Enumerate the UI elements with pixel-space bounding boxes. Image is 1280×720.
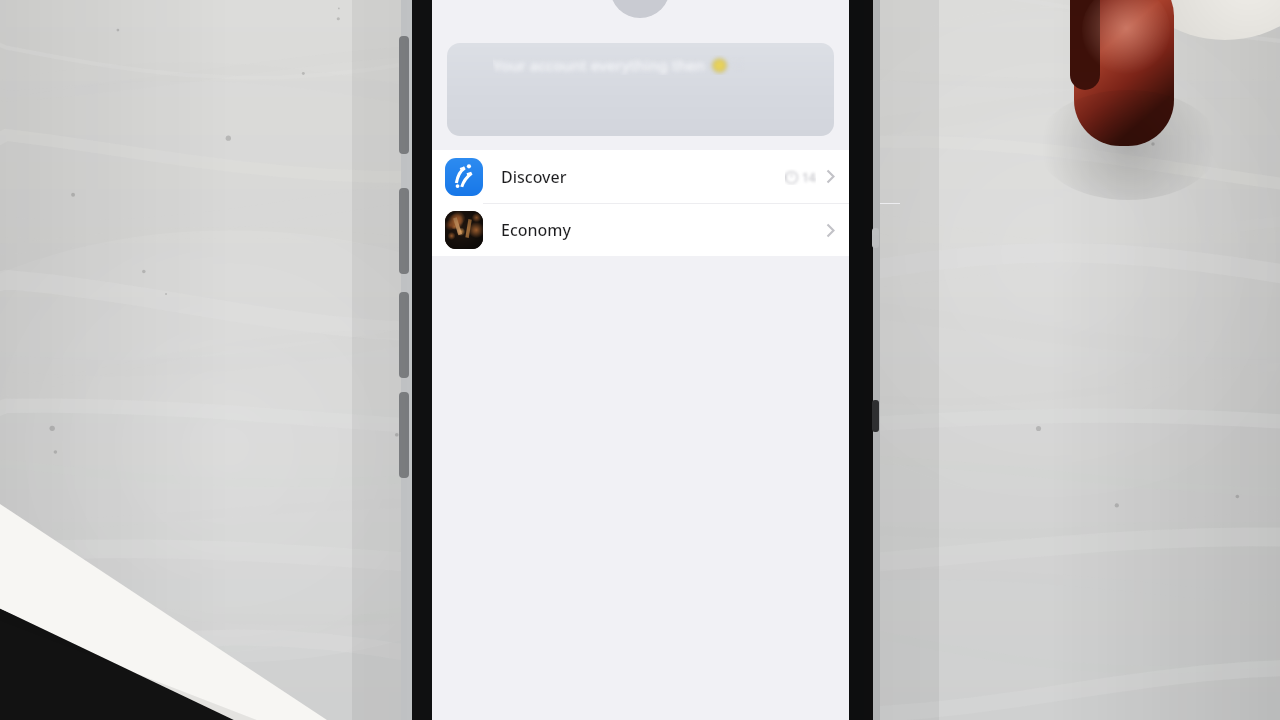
button[interactable]: Economy <box>432 204 849 256</box>
button[interactable]: Your account everything then <box>447 43 834 136</box>
staticText: Economy <box>501 219 571 241</box>
staticText: Discover <box>501 166 567 188</box>
staticText: 14 <box>802 169 816 185</box>
button[interactable]: Profile avatar <box>610 0 670 18</box>
staticText: Your account everything then <box>493 55 705 75</box>
button[interactable]: Discover <box>432 150 849 203</box>
